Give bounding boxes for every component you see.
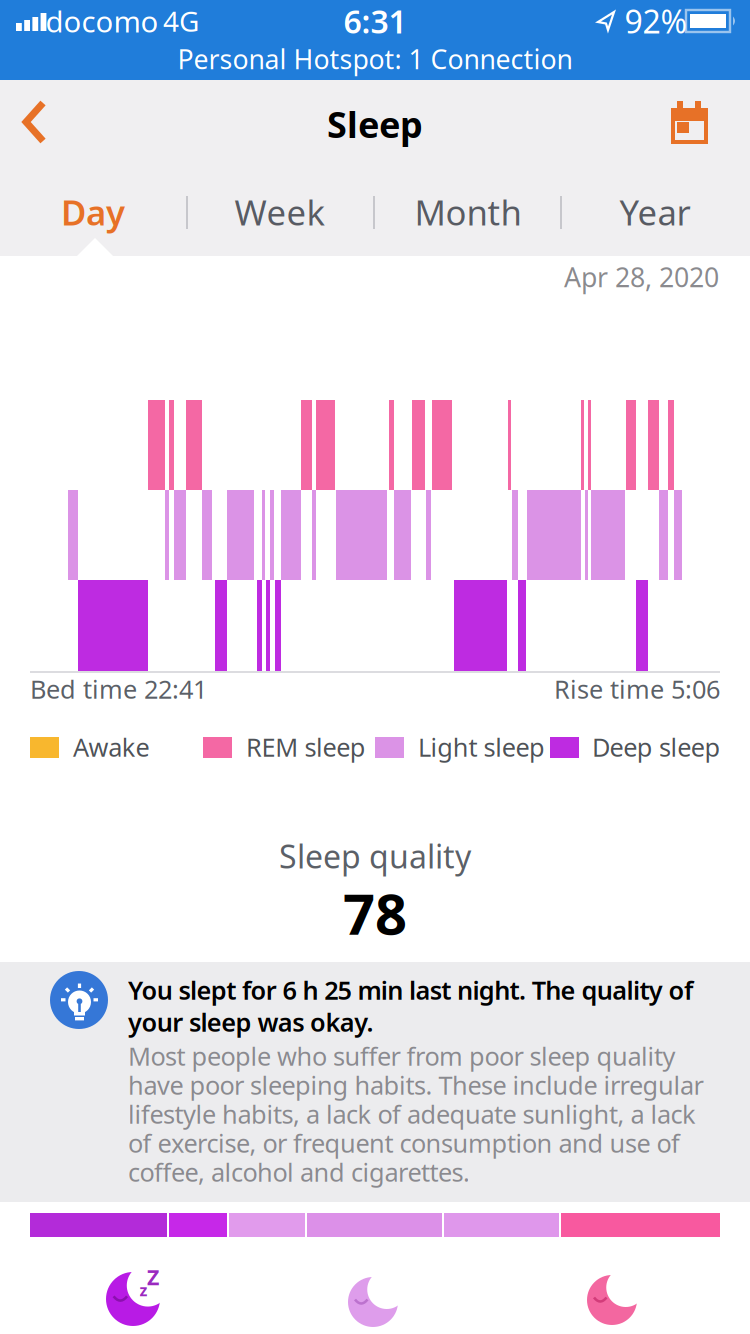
staticText: 78 <box>343 876 407 950</box>
staticText: Year <box>619 189 690 235</box>
staticText: Bed time 22:41 <box>30 672 207 706</box>
staticText: lifestyle habits, a lack of adequate sun… <box>128 1097 696 1131</box>
button[interactable]: Year <box>575 177 735 247</box>
button[interactable]: Day <box>13 177 173 247</box>
staticText: z <box>139 1279 147 1301</box>
staticText: Rise time 5:06 <box>554 672 720 706</box>
staticText: 4G <box>163 2 199 40</box>
staticText: REM sleep <box>246 730 366 764</box>
staticText: 92% <box>624 0 687 42</box>
staticText: You slept for 6 h 25 min last night. The… <box>128 973 693 1007</box>
staticText: Personal Hotspot: 1 Connection <box>177 41 572 77</box>
staticText: Deep sleep <box>592 730 720 764</box>
staticText: Apr 28, 2020 <box>564 259 719 295</box>
staticText: Week <box>234 189 325 235</box>
button[interactable] <box>661 96 717 152</box>
button[interactable] <box>3 92 63 152</box>
staticText: 6:31 <box>343 0 406 42</box>
staticText: docomo <box>45 1 158 40</box>
staticText: your sleep was okay. <box>128 1005 374 1039</box>
staticText: Month <box>414 189 521 235</box>
staticText: have poor sleeping habits. These include… <box>128 1068 703 1102</box>
staticText: Sleep <box>327 100 423 148</box>
staticText: Sleep quality <box>279 835 471 877</box>
button[interactable]: Week <box>200 177 360 247</box>
staticText: Most people who suffer from poor sleep q… <box>128 1039 675 1073</box>
staticText: Day <box>61 189 125 235</box>
staticText: Z <box>147 1263 159 1291</box>
staticText: Awake <box>73 730 149 764</box>
staticText: Light sleep <box>418 730 545 764</box>
staticText: of exercise, or frequent consumption and… <box>128 1126 680 1160</box>
staticText: coffee, alcohol and cigarettes. <box>128 1155 470 1189</box>
button[interactable]: Month <box>388 177 548 247</box>
